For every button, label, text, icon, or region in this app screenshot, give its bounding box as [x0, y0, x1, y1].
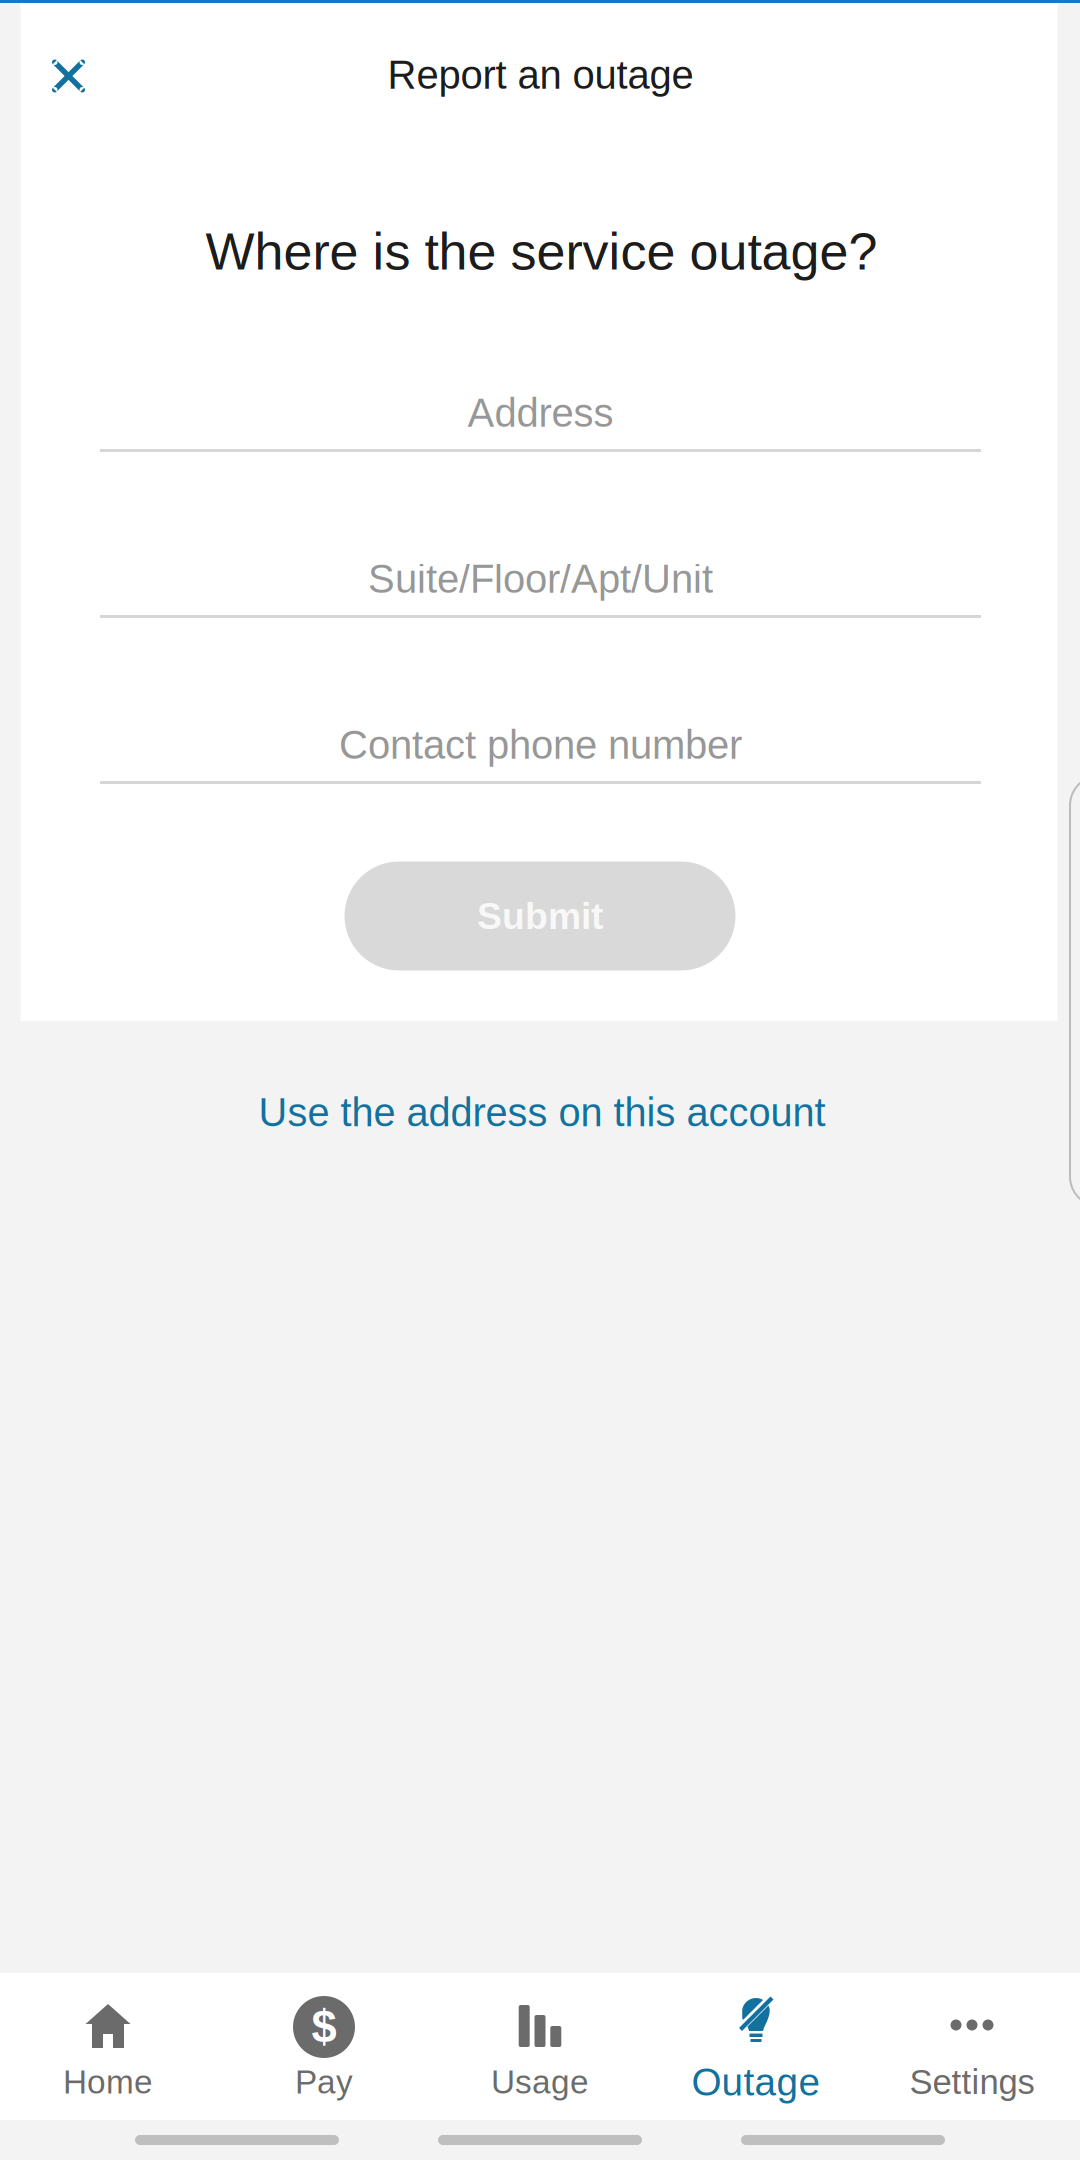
staticText: Home — [63, 2063, 153, 2101]
staticText: Use the address on this account — [258, 1090, 825, 1135]
staticText: $ — [311, 2002, 336, 2052]
button[interactable]: Use the address on this account — [192, 1077, 892, 1147]
staticText: Outage — [691, 2060, 820, 2104]
button[interactable]: Close — [8, 16, 128, 136]
button[interactable]: Outage — [648, 1973, 864, 2120]
staticText: Suite/Floor/Apt/Unit — [368, 557, 713, 601]
staticText: Report an outage — [387, 53, 693, 97]
button[interactable]: Submit — [344, 861, 735, 970]
staticText: Contact phone number — [339, 723, 742, 767]
button[interactable]: Usage — [432, 1973, 648, 2120]
staticText: Pay — [295, 2063, 353, 2101]
staticText: Address — [467, 391, 613, 435]
staticText: Submit — [477, 895, 603, 937]
button[interactable]: Home — [0, 1973, 216, 2120]
staticText: Where is the service outage? — [205, 222, 877, 281]
staticText: Usage — [491, 2063, 589, 2101]
button[interactable]: Settings — [864, 1973, 1080, 2120]
button[interactable]: $ — [216, 1973, 432, 2120]
staticText: Settings — [909, 2063, 1034, 2101]
